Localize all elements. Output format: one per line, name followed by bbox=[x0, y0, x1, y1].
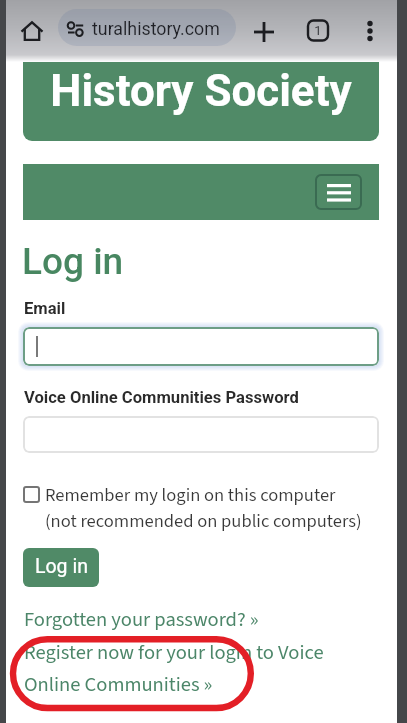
staticText: History Society bbox=[23, 65, 379, 117]
staticText: turalhistory.com bbox=[92, 18, 220, 39]
staticText: Remember my login on this computer bbox=[45, 482, 336, 508]
staticText: Log in bbox=[35, 555, 88, 578]
button[interactable]: Remember my login on this computer bbox=[23, 482, 379, 534]
staticText: (not recommended on public computers) bbox=[45, 508, 362, 534]
button[interactable]: More options bbox=[358, 18, 382, 42]
button[interactable]: New tab bbox=[250, 17, 278, 45]
staticText: Email bbox=[24, 299, 66, 318]
staticText: 1 bbox=[305, 23, 331, 38]
button[interactable]: Register now for your login to Voice Onl… bbox=[24, 638, 339, 699]
button[interactable]: Home bbox=[20, 19, 44, 43]
button[interactable]: Tabs bbox=[305, 17, 331, 43]
button[interactable]: turalhistory.com bbox=[58, 9, 236, 46]
button[interactable]: Menu bbox=[315, 174, 362, 210]
button[interactable]: Log in bbox=[23, 548, 99, 587]
button[interactable]: Forgotten your password? » bbox=[24, 605, 259, 634]
button[interactable] bbox=[23, 416, 379, 453]
staticText: Log in bbox=[22, 240, 124, 283]
staticText: Voice Online Communities Password bbox=[24, 388, 299, 407]
button[interactable] bbox=[23, 327, 379, 366]
